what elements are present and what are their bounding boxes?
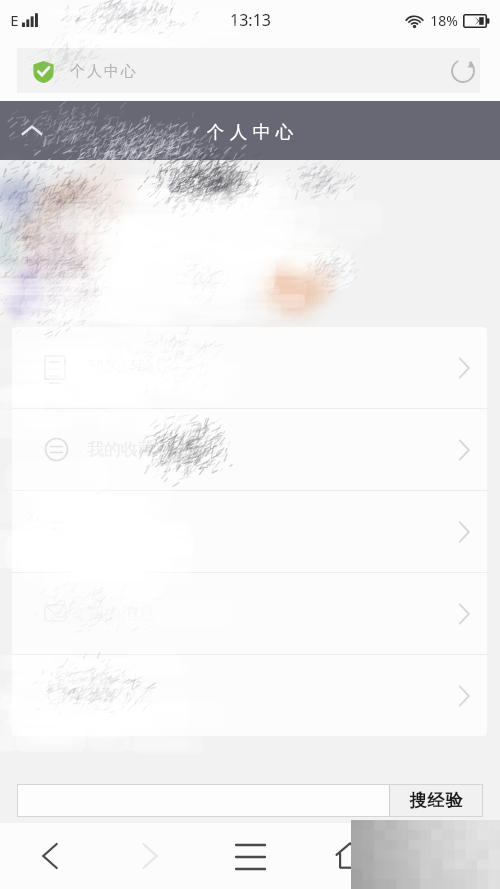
staticText: 个人中心 [69,62,137,81]
staticText: 18% [430,11,458,30]
button[interactable]: 搜经验 [390,785,482,816]
staticText: 我的设置 [87,685,155,706]
staticText: 个人中心 [204,121,296,143]
button[interactable]: 我的设置 [12,655,487,736]
button[interactable]: Refresh [446,54,480,88]
button[interactable]: Back [10,109,54,153]
button[interactable]: More [400,823,500,889]
staticText: 搜经验 [409,790,463,811]
button[interactable]: Home [300,823,400,889]
staticText: 我的收藏 [87,439,155,460]
button[interactable] [17,48,480,93]
button[interactable]: Back [0,823,100,889]
staticText: 13:13 [230,9,271,31]
button[interactable]: Menu [200,823,300,889]
staticText: E [10,10,19,30]
button[interactable]: 我的收藏 [12,409,487,490]
